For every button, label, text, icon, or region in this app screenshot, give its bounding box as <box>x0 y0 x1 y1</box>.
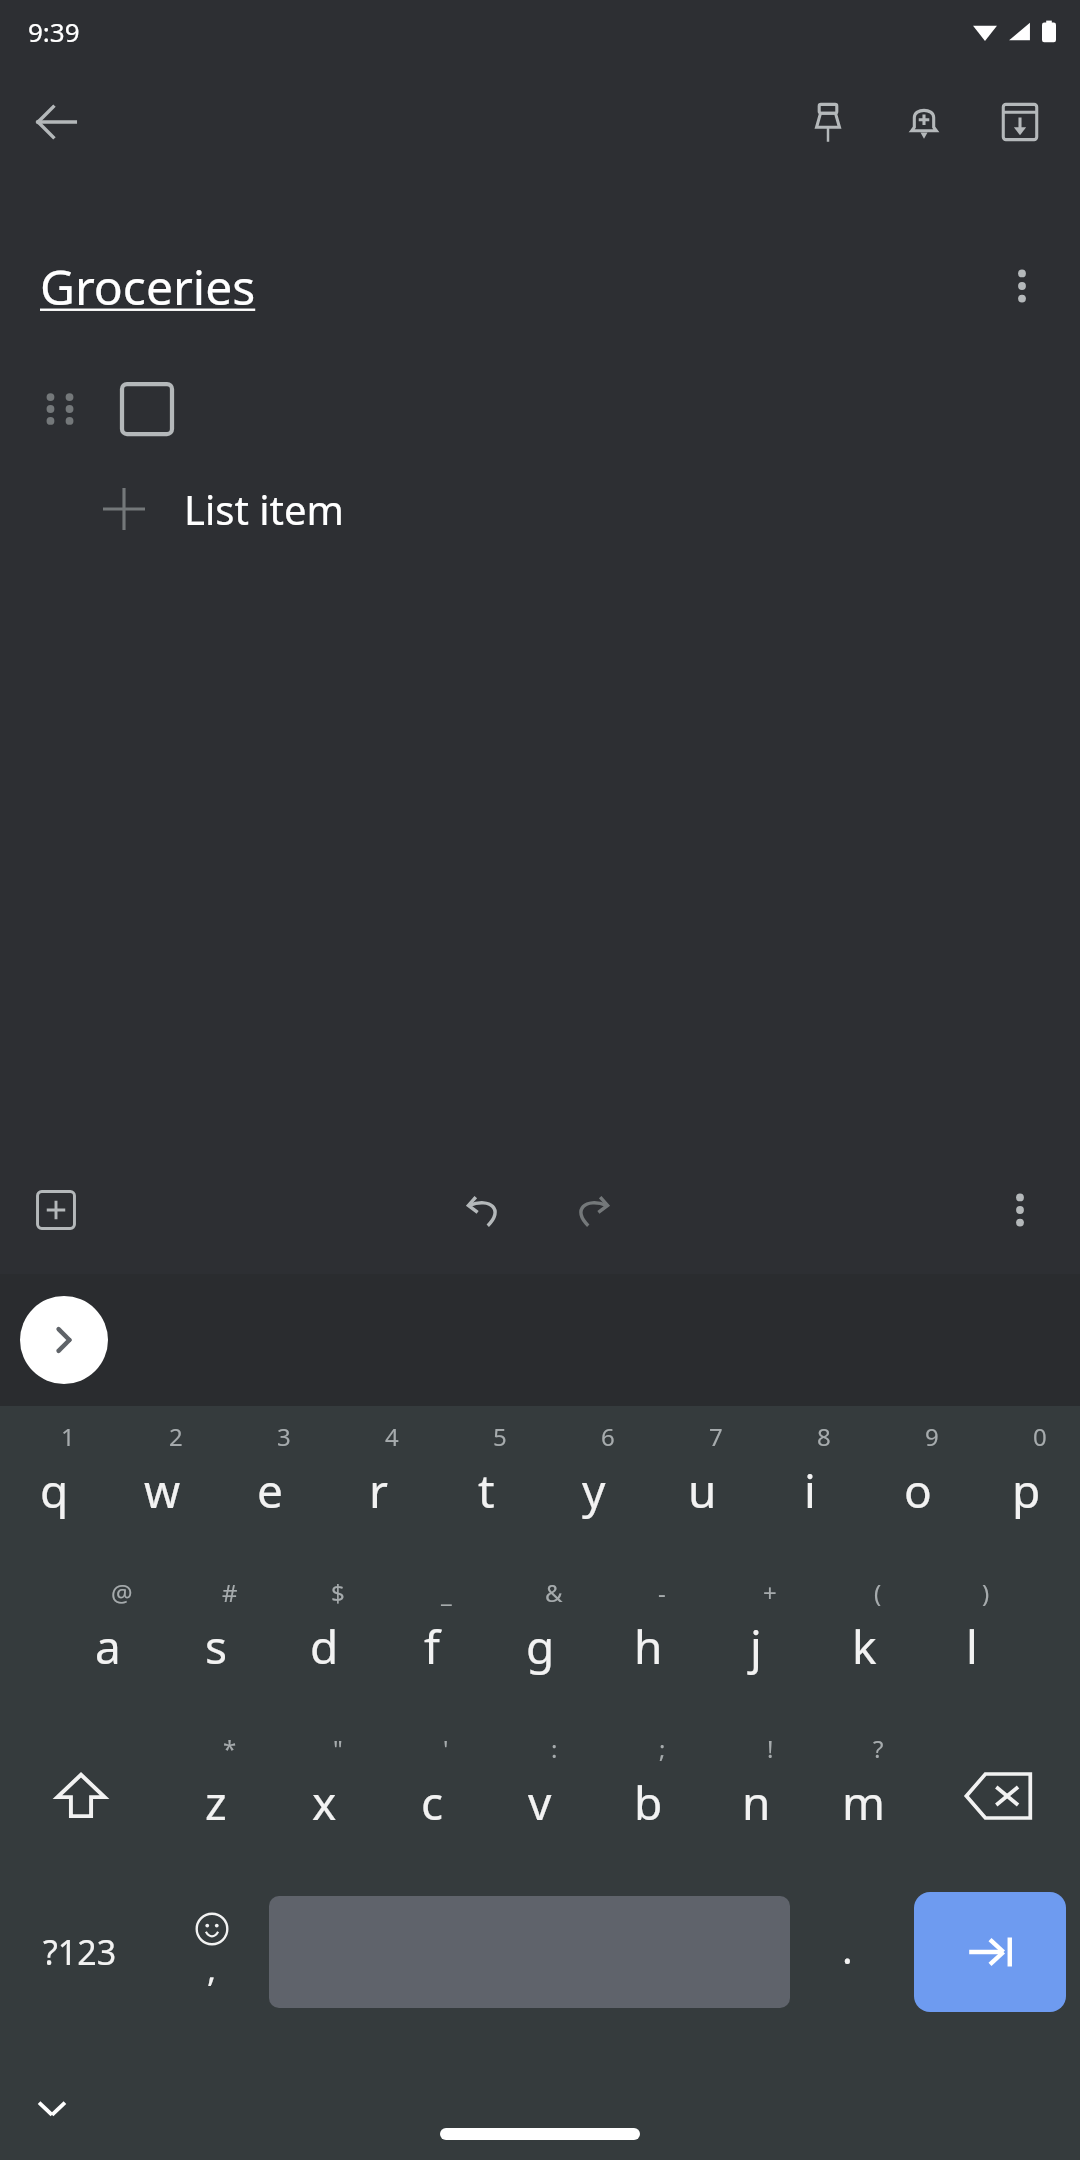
staticText: l <box>966 1615 978 1678</box>
staticText: y <box>582 1459 606 1522</box>
staticText: a <box>95 1615 121 1678</box>
staticText: k <box>852 1615 877 1678</box>
staticText: List item <box>184 482 344 536</box>
staticText: Groceries <box>40 254 256 319</box>
button[interactable]: 8 <box>756 1406 864 1562</box>
button[interactable]: Reminder <box>882 80 966 164</box>
button[interactable]: Reorder <box>30 379 90 439</box>
staticText: f <box>424 1615 440 1678</box>
button[interactable]: " <box>270 1718 378 1874</box>
button[interactable]: _ <box>378 1562 486 1718</box>
staticText: q <box>40 1459 69 1522</box>
button[interactable]: & <box>486 1562 594 1718</box>
button[interactable]: Hide keyboard <box>22 2078 82 2138</box>
staticText: 9:39 <box>28 14 80 49</box>
staticText: ; <box>659 1732 666 1765</box>
staticText: i <box>804 1459 816 1522</box>
staticText: ?123 <box>43 1929 117 1975</box>
button[interactable]: Archive <box>978 80 1062 164</box>
button[interactable]: Pin <box>786 80 870 164</box>
button[interactable]: * <box>162 1718 270 1874</box>
button[interactable]: 1 <box>0 1406 108 1562</box>
staticText: @ <box>111 1576 133 1609</box>
staticText: 1 <box>61 1420 75 1453</box>
button[interactable]: 7 <box>648 1406 756 1562</box>
staticText: z <box>205 1771 227 1834</box>
staticText: j <box>750 1615 762 1678</box>
staticText: - <box>658 1576 666 1609</box>
staticText: + <box>763 1576 777 1609</box>
staticText: 5 <box>493 1420 507 1453</box>
button[interactable]: . <box>794 1874 900 2030</box>
staticText: " <box>333 1732 343 1765</box>
staticText: & <box>545 1576 563 1609</box>
staticText: r <box>369 1459 388 1522</box>
button[interactable]: Backspace <box>918 1718 1080 1874</box>
button[interactable]: ? <box>810 1718 918 1874</box>
staticText: 2 <box>169 1420 183 1453</box>
button[interactable]: ; <box>594 1718 702 1874</box>
staticText: 4 <box>385 1420 399 1453</box>
staticText: ? <box>873 1732 884 1765</box>
button[interactable]: Redo <box>549 1168 633 1252</box>
staticText: . <box>842 1921 853 1975</box>
button[interactable]: : <box>486 1718 594 1874</box>
staticText: v <box>528 1771 552 1834</box>
staticText: m <box>842 1771 886 1834</box>
staticText: 7 <box>709 1420 723 1453</box>
button[interactable]: List item <box>0 472 1080 546</box>
staticText: * <box>223 1732 237 1765</box>
staticText: e <box>257 1459 283 1522</box>
button[interactable]: ?123 <box>0 1874 159 2030</box>
button[interactable]: Expand suggestions <box>20 1296 108 1384</box>
button[interactable]: 5 <box>432 1406 540 1562</box>
staticText: b <box>634 1771 663 1834</box>
button[interactable]: 4 <box>324 1406 432 1562</box>
staticText: n <box>742 1771 771 1834</box>
staticText: 9 <box>925 1420 939 1453</box>
button[interactable]: Check item <box>117 379 177 439</box>
button[interactable]: - <box>594 1562 702 1718</box>
staticText: , <box>207 1946 217 1992</box>
button[interactable]: ) <box>918 1562 1026 1718</box>
staticText: 8 <box>817 1420 831 1453</box>
staticText: ! <box>767 1732 774 1765</box>
staticText: 6 <box>601 1420 615 1453</box>
button[interactable]: ! <box>702 1718 810 1874</box>
button[interactable]: 3 <box>216 1406 324 1562</box>
button[interactable]: # <box>162 1562 270 1718</box>
staticText: 3 <box>277 1420 291 1453</box>
button[interactable]: 0 <box>972 1406 1080 1562</box>
button[interactable]: More <box>978 1168 1062 1252</box>
staticText: d <box>310 1615 339 1678</box>
staticText: : <box>551 1732 558 1765</box>
button[interactable]: + <box>702 1562 810 1718</box>
button[interactable]: Shift <box>0 1718 162 1874</box>
staticText: x <box>312 1771 337 1834</box>
staticText: _ <box>441 1576 452 1609</box>
staticText: t <box>478 1459 495 1522</box>
button[interactable]: Back <box>14 80 98 164</box>
button[interactable]: ( <box>810 1562 918 1718</box>
button[interactable]: Add <box>14 1168 98 1252</box>
staticText: s <box>205 1615 228 1678</box>
staticText: # <box>222 1576 238 1609</box>
button[interactable]: 9 <box>864 1406 972 1562</box>
button[interactable]: Emoji <box>159 1874 265 2030</box>
button[interactable]: Groceries <box>40 254 256 319</box>
button[interactable]: 2 <box>108 1406 216 1562</box>
staticText: g <box>526 1615 555 1678</box>
staticText: c <box>421 1771 444 1834</box>
staticText: u <box>688 1459 717 1522</box>
staticText: p <box>1012 1459 1041 1522</box>
button[interactable]: @ <box>54 1562 162 1718</box>
button[interactable]: Enter <box>914 1892 1066 2012</box>
button[interactable]: 6 <box>540 1406 648 1562</box>
button[interactable]: Undo <box>443 1168 527 1252</box>
button[interactable]: $ <box>270 1562 378 1718</box>
button[interactable]: ' <box>378 1718 486 1874</box>
staticText: $ <box>331 1576 345 1609</box>
staticText: h <box>634 1615 663 1678</box>
button[interactable]: More options <box>982 246 1062 326</box>
